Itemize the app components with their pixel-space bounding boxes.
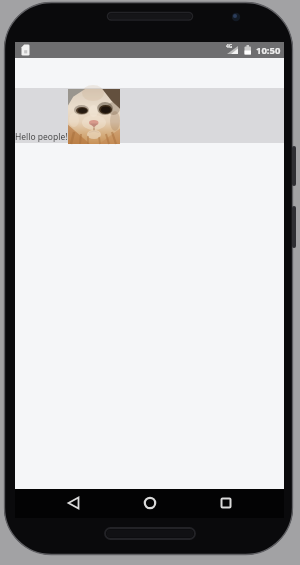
- button[interactable]: [214, 491, 238, 515]
- button[interactable]: [62, 491, 86, 515]
- staticText: Hello people!: [15, 131, 68, 143]
- button[interactable]: Hello people!: [15, 88, 284, 143]
- button[interactable]: [138, 491, 162, 515]
- staticText: 4G: [226, 43, 233, 50]
- staticText: 10:50: [256, 44, 281, 57]
